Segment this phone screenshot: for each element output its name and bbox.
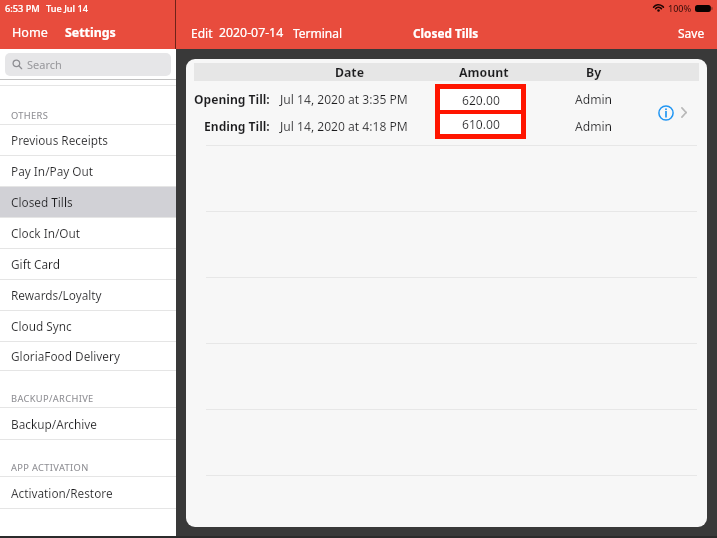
staticText: Admin — [575, 118, 613, 134]
button[interactable]: Cloud Sync — [0, 311, 176, 341]
staticText: Rewards/Loyalty — [11, 287, 102, 303]
staticText: Ending Till: — [204, 118, 270, 134]
staticText: APP ACTIVATION — [11, 461, 89, 474]
staticText: Terminal — [293, 25, 343, 41]
button[interactable] — [186, 81, 707, 145]
staticText: 6:53 PM — [5, 2, 40, 15]
button[interactable]: Edit — [188, 20, 216, 46]
staticText: Date — [335, 64, 365, 81]
button[interactable]: Rewards/Loyalty — [0, 280, 176, 310]
staticText: Activation/Restore — [11, 485, 113, 501]
staticText: Tue Jul 14 — [46, 2, 88, 15]
button[interactable]: Gift Card — [0, 249, 176, 279]
staticText: Closed Tills — [11, 194, 73, 210]
button[interactable]: Settings — [61, 19, 120, 46]
staticText: Settings — [65, 24, 116, 41]
staticText: Amount — [459, 64, 509, 81]
staticText: 100% — [668, 2, 692, 14]
staticText: Backup/Archive — [11, 416, 97, 432]
button[interactable]: Backup/Archive — [0, 408, 176, 439]
staticText: Cloud Sync — [11, 318, 72, 334]
button[interactable]: Terminal — [290, 20, 346, 46]
staticText: 620.00 — [462, 92, 500, 108]
staticText: Edit — [191, 25, 213, 41]
staticText: Admin — [575, 91, 613, 107]
staticText: Jul 14, 2020 at 4:18 PM — [280, 118, 408, 134]
staticText: Save — [678, 25, 705, 41]
staticText: GloriaFood Delivery — [11, 348, 120, 364]
staticText: Previous Receipts — [11, 132, 108, 148]
staticText: 610.00 — [462, 116, 500, 132]
button[interactable]: Search — [5, 53, 171, 76]
staticText: Pay In/Pay Out — [11, 163, 94, 179]
staticText: OTHERS — [11, 109, 49, 122]
staticText: By — [586, 64, 602, 81]
staticText: Search — [27, 57, 62, 72]
staticText: Opening Till: — [194, 91, 270, 107]
staticText: Jul 14, 2020 at 3:35 PM — [280, 91, 408, 107]
button[interactable]: Save — [669, 20, 717, 46]
button[interactable]: Clock In/Out — [0, 218, 176, 248]
button[interactable]: Previous Receipts — [0, 125, 176, 155]
staticText: 2020-07-14 — [219, 24, 284, 41]
button[interactable]: Closed Tills — [0, 187, 176, 217]
staticText: Home — [12, 24, 48, 41]
button[interactable]: Home — [8, 19, 52, 46]
button[interactable]: Info — [656, 103, 675, 122]
button[interactable]: Details — [678, 104, 690, 121]
button[interactable]: Activation/Restore — [0, 477, 176, 508]
staticText: Closed Tills — [413, 25, 479, 41]
staticText: Gift Card — [11, 256, 60, 272]
button[interactable]: Pay In/Pay Out — [0, 156, 176, 186]
button[interactable]: GloriaFood Delivery — [0, 342, 176, 370]
staticText: Clock In/Out — [11, 225, 81, 241]
staticText: BACKUP/ARCHIVE — [11, 392, 94, 405]
